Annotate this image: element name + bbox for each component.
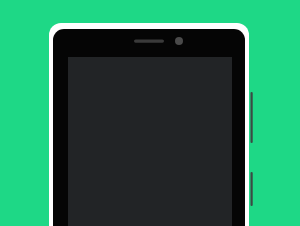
button[interactable]: Smartphone device illustration xyxy=(0,0,300,226)
